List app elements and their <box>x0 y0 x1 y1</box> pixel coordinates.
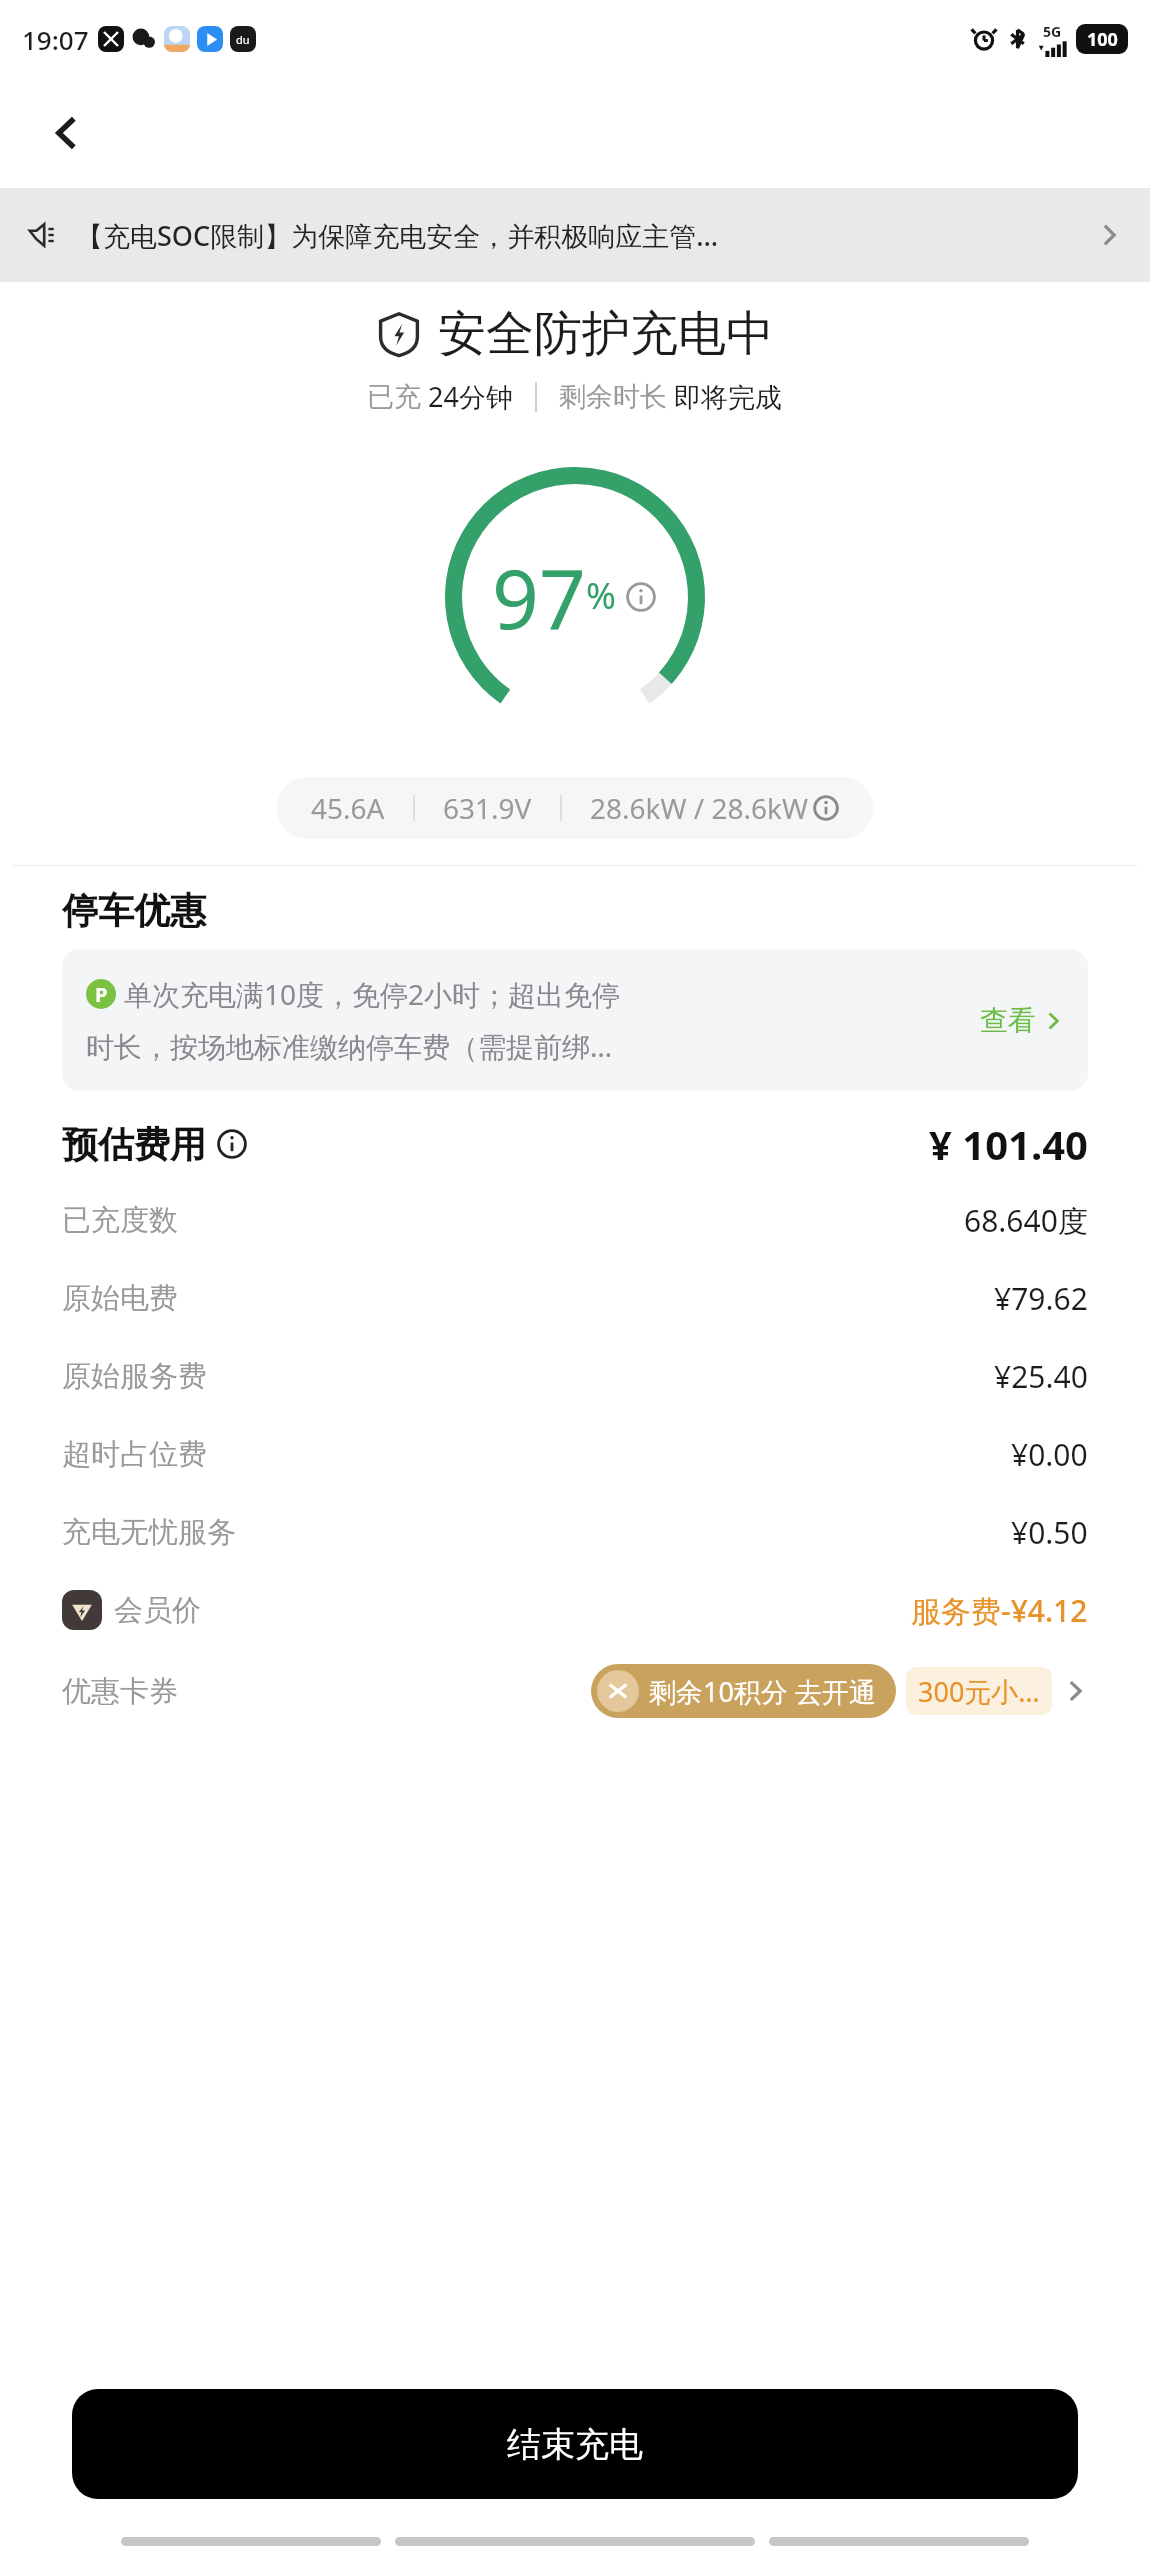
button[interactable]: 优惠卡券 <box>0 1649 1150 1733</box>
button[interactable]: Fee info <box>216 1128 248 1160</box>
staticText: 即将完成 <box>667 378 783 415</box>
staticText: 剩余10积分 去开通 <box>649 1673 876 1710</box>
staticText: 19:07 <box>22 22 89 57</box>
staticText: 原始服务费 <box>62 1358 207 1395</box>
button[interactable]: P <box>62 949 1088 1091</box>
staticText: 优惠卡券 <box>62 1673 178 1710</box>
staticText: du <box>236 32 250 47</box>
button[interactable]: Battery info <box>624 580 658 614</box>
button[interactable]: Back <box>38 104 96 162</box>
staticText: 停车优惠 <box>62 888 206 933</box>
staticText: 5G <box>1043 22 1062 41</box>
staticText: 查看 <box>980 1003 1036 1038</box>
staticText: 28.6kW / 28.6kW <box>590 789 809 827</box>
staticText: ¥79.62 <box>994 1278 1088 1319</box>
staticText: 631.9V <box>443 789 532 827</box>
staticText: 安全防护充电中 <box>438 304 774 364</box>
button[interactable]: 45.6A <box>277 777 873 839</box>
staticText: 97 <box>492 541 586 653</box>
staticText: P <box>95 981 108 1008</box>
staticText: ¥0.50 <box>1011 1512 1088 1553</box>
staticText: 24分钟 <box>421 378 513 415</box>
staticText: 服务费-¥4.12 <box>911 1590 1088 1631</box>
staticText: 预估费用 <box>62 1122 206 1167</box>
staticText: 300元小… <box>918 1673 1040 1710</box>
staticText: ¥0.00 <box>1011 1434 1088 1475</box>
staticText: 【充电SOC限制】为保障充电安全，并积极响应主管… <box>76 217 1086 254</box>
staticText: 原始电费 <box>62 1280 178 1317</box>
staticText: 充电无忧服务 <box>62 1514 236 1551</box>
staticText: 会员价 <box>114 1592 201 1629</box>
staticText: 100 <box>1087 27 1118 52</box>
staticText: ¥25.40 <box>994 1356 1088 1397</box>
button[interactable]: 结束充电 <box>72 2389 1078 2499</box>
staticText: 已充 <box>367 380 421 414</box>
staticText: ¥ 101.40 <box>929 1117 1088 1171</box>
staticText: 45.6A <box>311 789 385 827</box>
staticText: 已充度数 <box>62 1202 178 1239</box>
staticText: 剩余时长 <box>559 380 667 414</box>
staticText: % <box>586 571 616 620</box>
button[interactable]: 会员价 <box>0 1571 1150 1649</box>
button[interactable]: 【充电SOC限制】为保障充电安全，并积极响应主管… <box>0 188 1150 282</box>
staticText: 单次充电满10度，免停2小时；超出免停 <box>124 975 621 1013</box>
staticText: 时长，按场地标准缴纳停车费（需提前绑… <box>86 1027 613 1065</box>
staticText: 超时占位费 <box>62 1436 207 1473</box>
staticText: 结束充电 <box>507 2423 643 2466</box>
staticText: 68.640度 <box>964 1200 1088 1241</box>
